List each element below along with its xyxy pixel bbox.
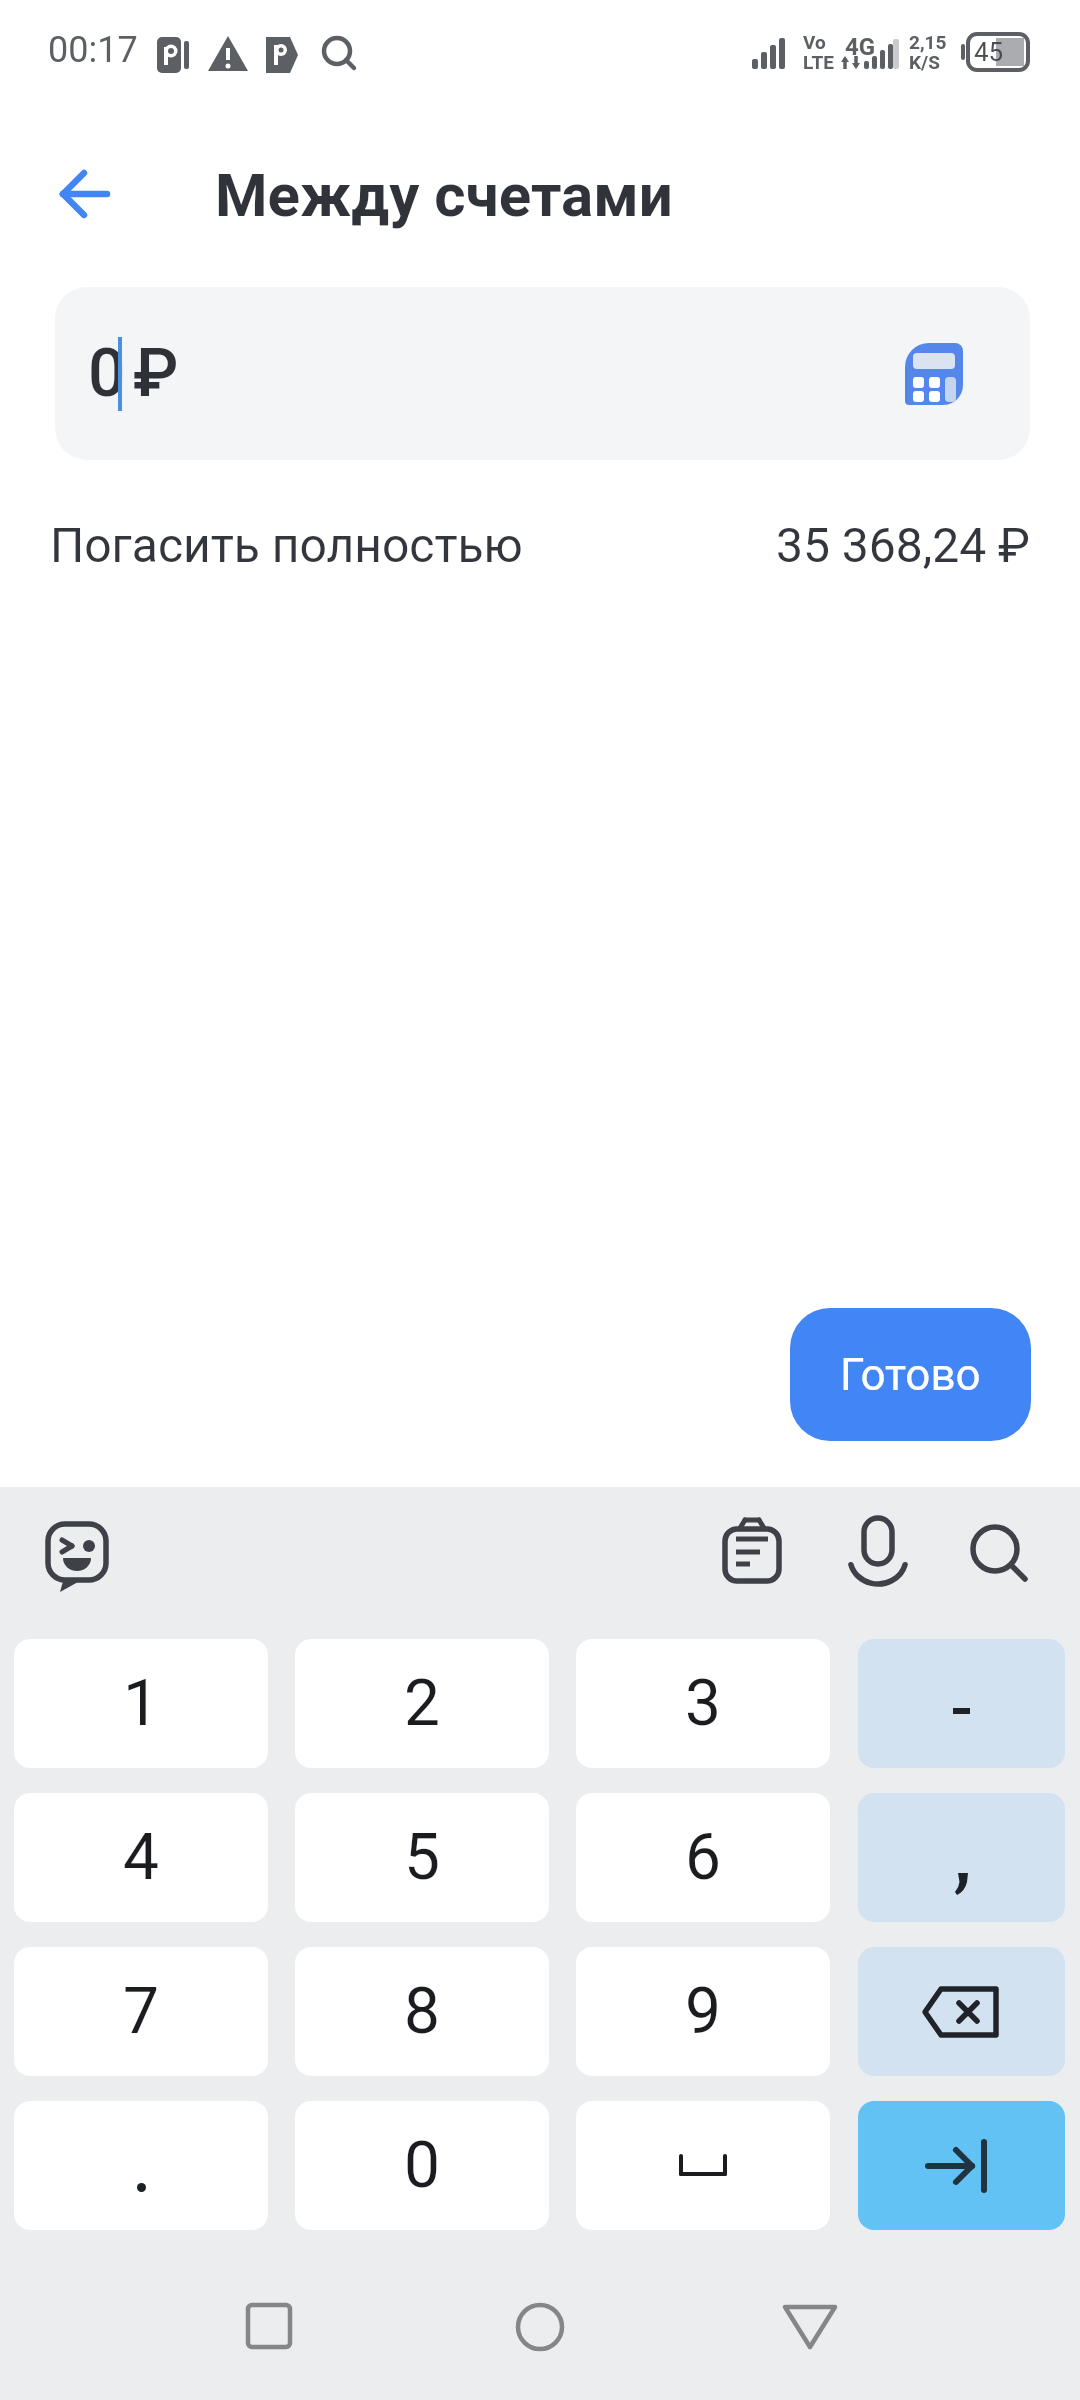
button[interactable] [858, 2101, 1065, 2230]
staticText: 45 [974, 37, 1004, 67]
button[interactable]: 7 [14, 1947, 268, 2076]
button[interactable] [838, 1510, 918, 1594]
staticText: 0 [88, 335, 126, 412]
staticText: 2,15 K/S [909, 31, 947, 73]
staticText: 9 [685, 1974, 721, 2049]
button[interactable]: Готово [790, 1308, 1031, 1441]
button[interactable]: 0 [55, 287, 1030, 460]
staticText: Готово [840, 1349, 981, 1401]
staticText: 6 [685, 1820, 721, 1895]
staticText: Между счетами [215, 160, 673, 230]
staticText: 3 [685, 1666, 721, 1741]
staticText: 8 [404, 1974, 440, 2049]
button[interactable]: 3 [576, 1639, 830, 1768]
staticText: 5 [404, 1820, 440, 1895]
button[interactable] [712, 1512, 792, 1592]
button[interactable]: 4 [14, 1793, 268, 1922]
button[interactable]: 6 [576, 1793, 830, 1922]
staticText: ₽ [133, 335, 179, 412]
staticText: 4 [123, 1820, 159, 1895]
button[interactable]: 8 [295, 1947, 549, 2076]
button[interactable] [470, 2280, 610, 2374]
staticText: 35 368,24 ₽ [776, 517, 1030, 573]
staticText: 1 [123, 1666, 159, 1741]
button[interactable] [858, 1639, 1065, 1768]
button[interactable]: 9 [576, 1947, 830, 2076]
staticText: 00:17 [48, 29, 138, 71]
button[interactable] [14, 2101, 268, 2230]
button[interactable] [200, 2280, 340, 2374]
staticText: 2 [404, 1666, 440, 1741]
button[interactable] [740, 2280, 880, 2374]
staticText: Погасить полностью [50, 517, 523, 573]
staticText: Vo LTE [803, 31, 834, 73]
staticText: 7 [123, 1974, 159, 2049]
button[interactable] [858, 1793, 1065, 1922]
button[interactable] [40, 160, 130, 230]
button[interactable] [36, 1512, 120, 1600]
button[interactable]: 2 [295, 1639, 549, 1768]
staticText: 4G [845, 33, 876, 59]
button[interactable] [958, 1512, 1042, 1592]
button[interactable]: 0 [295, 2101, 549, 2230]
button[interactable]: 5 [295, 1793, 549, 1922]
button[interactable] [858, 1947, 1065, 2076]
button[interactable] [576, 2101, 830, 2230]
button[interactable]: 1 [14, 1639, 268, 1768]
staticText: 0 [404, 2128, 440, 2203]
